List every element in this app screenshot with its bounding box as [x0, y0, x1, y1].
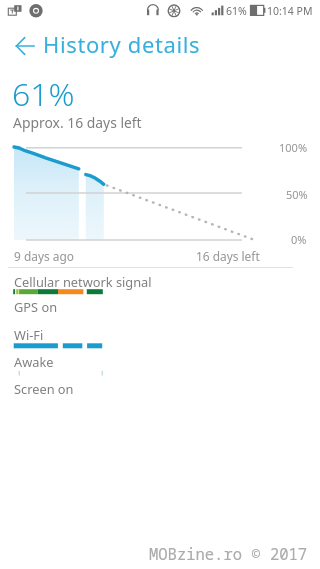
staticText: GPS on: [14, 298, 58, 315]
staticText: Wi-Fi: [14, 326, 44, 343]
button[interactable]: Back: [8, 30, 40, 62]
staticText: 61%: [226, 4, 247, 18]
staticText: 10:14 PM: [267, 4, 313, 18]
staticText: Cellular network signal: [14, 273, 152, 290]
staticText: 61%: [12, 72, 75, 116]
staticText: 9 days ago: [14, 248, 74, 264]
staticText: 0%: [291, 232, 307, 247]
staticText: 50%: [286, 187, 308, 202]
staticText: 16 days left: [196, 248, 260, 264]
staticText: Approx. 16 days left: [13, 113, 142, 132]
staticText: History details: [43, 29, 201, 59]
staticText: Screen on: [14, 380, 74, 397]
staticText: MOBzine.ro © 2017: [149, 543, 308, 564]
staticText: 100%: [279, 140, 308, 155]
staticText: Awake: [14, 353, 54, 370]
